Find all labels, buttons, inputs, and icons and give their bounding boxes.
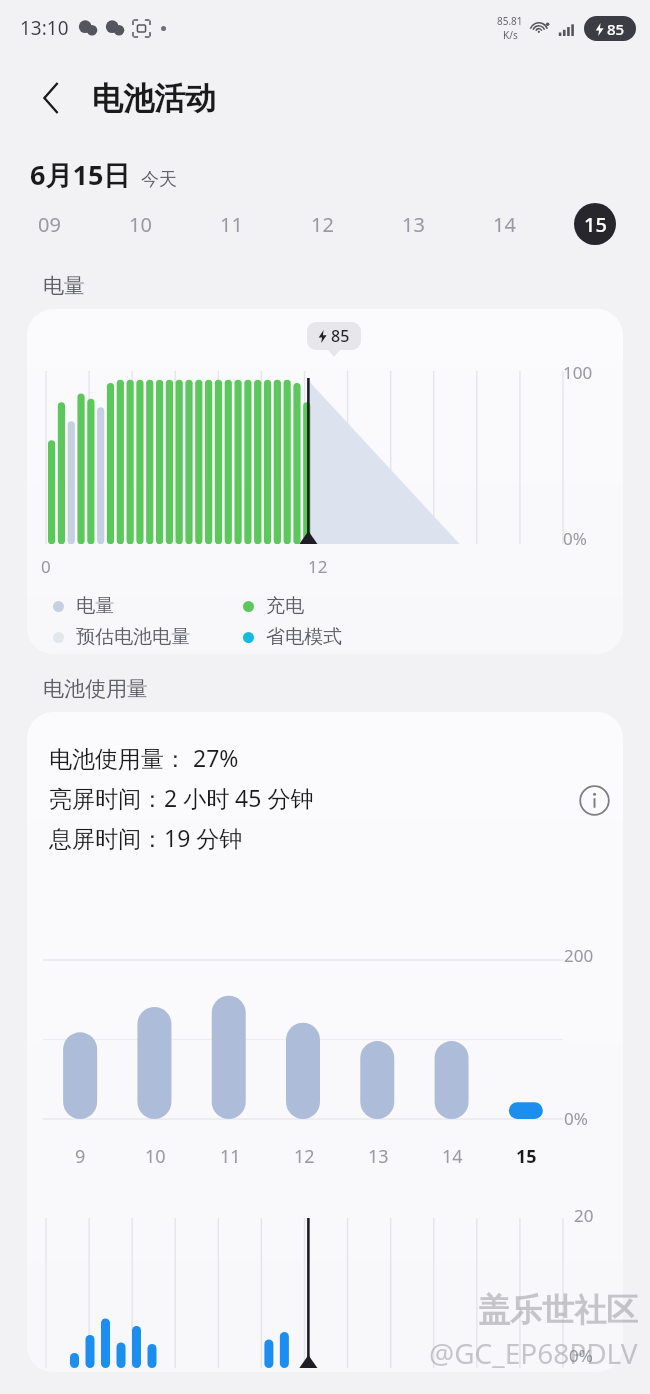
staticText: 11 xyxy=(220,211,243,238)
staticText: 200 xyxy=(564,944,594,967)
staticText: 85 xyxy=(331,325,350,347)
staticText: 13:10 xyxy=(20,15,69,41)
staticText: 14 xyxy=(493,211,516,238)
button[interactable]: Back xyxy=(30,76,74,120)
staticText: 12 xyxy=(311,211,334,238)
staticText: 15 xyxy=(584,211,607,238)
staticText: 0 xyxy=(41,555,51,578)
staticText: 0% xyxy=(569,1344,593,1367)
staticText: 9 xyxy=(75,1144,86,1169)
button[interactable]: 省电模式 xyxy=(243,625,342,649)
staticText: 今天 xyxy=(141,168,177,191)
staticText: 20 xyxy=(574,1204,594,1227)
staticText: @GC_EP68PDLV xyxy=(429,1334,638,1372)
staticText: 电量 xyxy=(76,594,114,618)
button[interactable]: Info xyxy=(572,778,616,822)
staticText: 电池使用量： 27% xyxy=(49,742,239,773)
staticText: 11 xyxy=(220,1144,241,1169)
staticText: 0% xyxy=(563,527,587,550)
staticText: 电量 xyxy=(43,273,85,299)
button[interactable]: 预估电池电量 xyxy=(53,625,243,649)
button[interactable]: 充电 xyxy=(243,594,304,618)
button[interactable]: 14 xyxy=(479,199,529,249)
button[interactable]: 11 xyxy=(206,199,256,249)
staticText: 12 xyxy=(294,1144,315,1169)
staticText: 6月15日 xyxy=(30,156,131,193)
staticText: 85 xyxy=(607,19,625,39)
staticText: 电池使用量 xyxy=(43,676,148,702)
staticText: 盖乐世社区 xyxy=(478,1290,638,1330)
staticText: 充电 xyxy=(266,594,304,618)
staticText: 14 xyxy=(442,1144,463,1169)
staticText: 85.81 xyxy=(497,14,523,28)
staticText: K/s xyxy=(503,28,518,42)
staticText: 省电模式 xyxy=(266,625,342,649)
button[interactable]: 85 xyxy=(27,309,623,654)
button[interactable]: 09 xyxy=(24,199,74,249)
button[interactable]: 10 xyxy=(115,199,165,249)
button[interactable]: 电量 xyxy=(53,594,243,618)
button[interactable]: 12 xyxy=(297,199,347,249)
button[interactable]: 15 xyxy=(570,199,620,249)
staticText: 09 xyxy=(38,211,61,238)
staticText: 10 xyxy=(145,1144,166,1169)
staticText: 13 xyxy=(368,1144,389,1169)
staticText: 0% xyxy=(564,1107,588,1130)
staticText: 15 xyxy=(516,1144,537,1169)
button[interactable]: 13 xyxy=(388,199,438,249)
staticText: 12 xyxy=(308,555,328,578)
staticText: 13 xyxy=(402,211,425,238)
staticText: 电池活动 xyxy=(92,79,216,118)
button[interactable]: 电池使用量： 27% xyxy=(27,712,623,1372)
staticText: 亮屏时间：2 小时 45 分钟 xyxy=(49,782,314,813)
staticText: 100 xyxy=(563,361,593,384)
staticText: 息屏时间：19 分钟 xyxy=(49,822,243,853)
staticText: 10 xyxy=(129,211,152,238)
staticText: 预估电池电量 xyxy=(76,625,190,649)
